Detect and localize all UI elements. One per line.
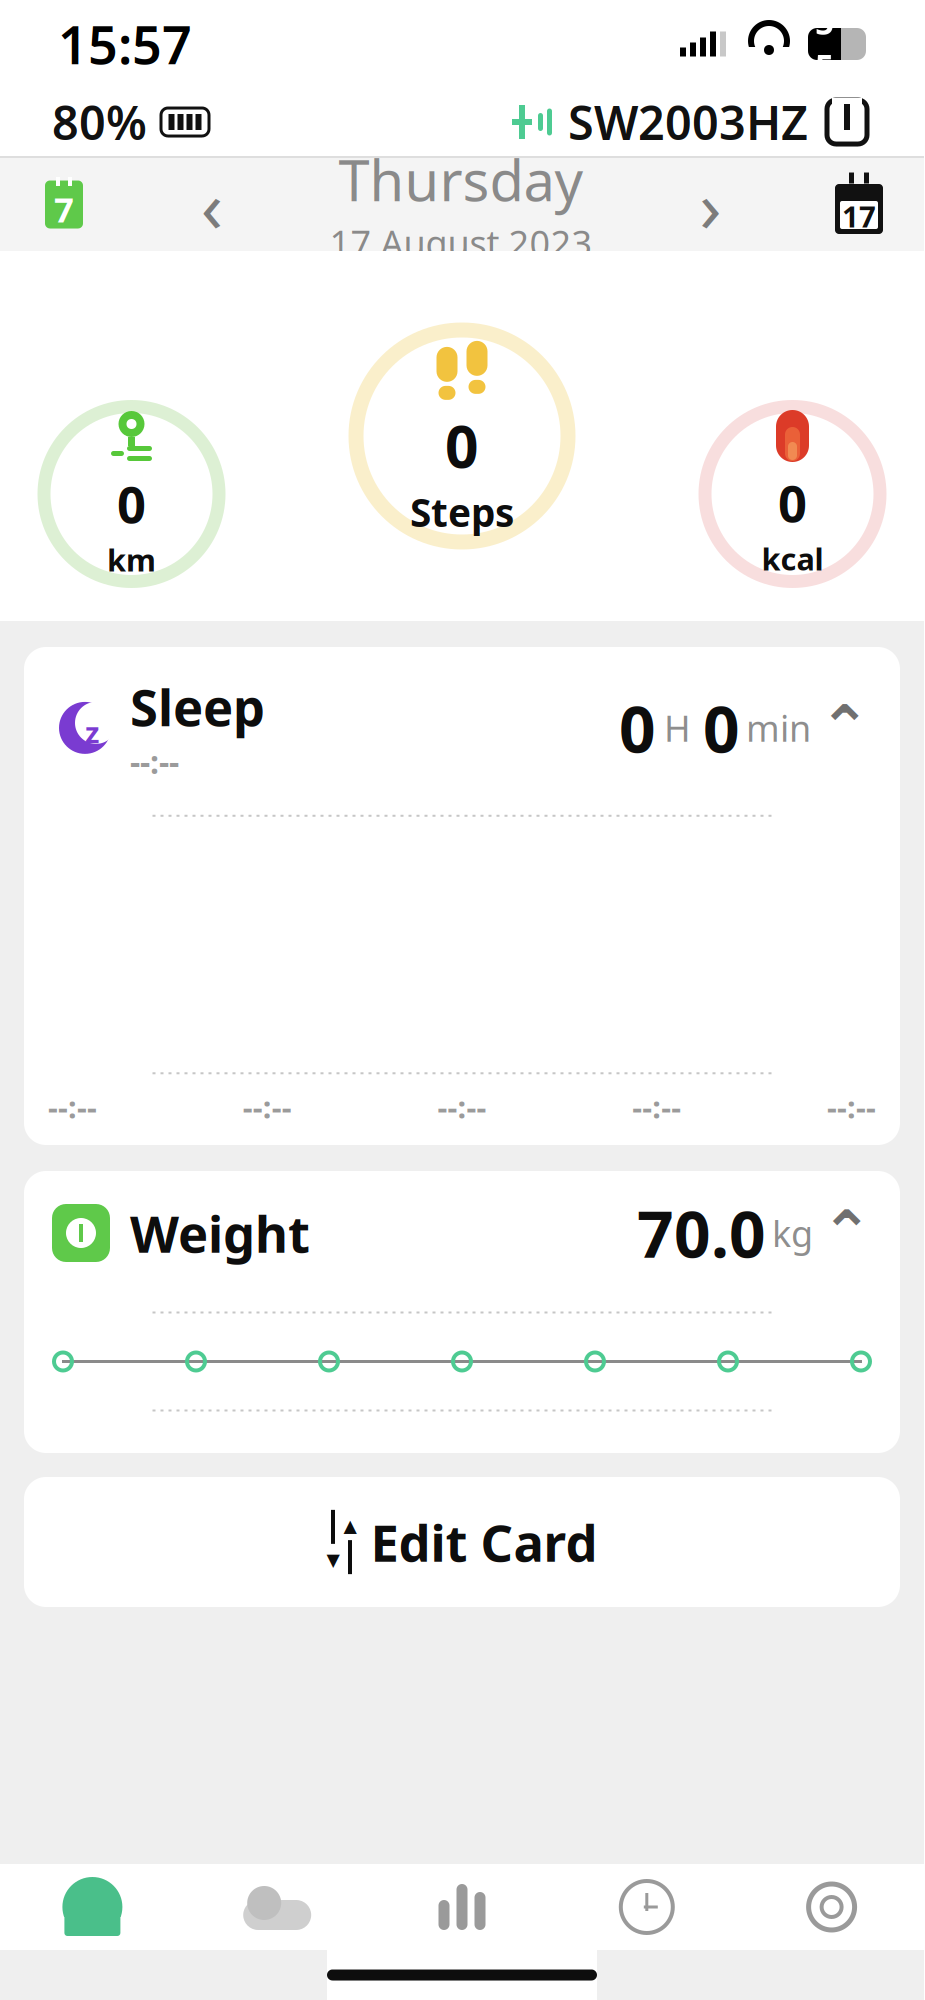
button[interactable]: Last 7 days [34,174,94,234]
button[interactable]: Settings [739,1864,924,1950]
staticText: 55 [815,0,834,88]
button[interactable]: ▾ [24,1477,900,1607]
staticText: ▾ [326,1544,339,1574]
staticText: kcal [761,538,823,579]
staticText: › [699,157,721,252]
staticText: 0 [619,685,656,770]
staticText: ▴ [343,1510,356,1540]
button[interactable]: Activity [185,1864,370,1950]
staticText: --:-- [243,1086,292,1127]
button[interactable]: Home [0,1864,185,1950]
staticText: 15:57 [58,9,192,79]
staticText: --:-- [827,1086,876,1127]
button[interactable]: Statistics [370,1864,554,1950]
staticText: 0 [703,685,740,770]
staticText: km [107,539,156,580]
staticText: --:-- [437,1086,486,1127]
button[interactable]: Calendar [828,173,890,235]
staticText: 80% [52,91,147,153]
staticText: 70.0 [637,1190,766,1275]
staticText: --:-- [48,1086,97,1127]
staticText: Edit Card [370,1508,597,1576]
staticText: kg [772,1209,813,1257]
staticText: H [664,704,691,752]
staticText: Sleep [130,673,265,740]
staticText: z [85,712,99,751]
staticText: 7 [54,186,74,232]
staticText: Weight [130,1199,310,1267]
staticText: Thursday [338,142,583,217]
button[interactable]: Previous day [177,169,247,239]
staticText: SW2003HZ [568,91,808,153]
button[interactable]: Next day [675,169,745,239]
button[interactable]: Share [822,95,872,149]
staticText: 17 [842,196,876,235]
staticText: ⌃ [821,1198,872,1268]
button[interactable]: History [554,1864,739,1950]
staticText: --:-- [632,1086,681,1127]
button[interactable]: Weight [24,1171,900,1453]
staticText: min [746,704,811,752]
staticText: ‹ [201,157,223,252]
button[interactable]: z [24,647,900,1145]
staticText: --:-- [130,740,179,783]
staticText: 17 August 2023 [329,219,592,267]
staticText: 0 [445,406,479,484]
staticText: 0 [778,469,807,536]
staticText: 0 [117,470,146,537]
staticText: ⌃ [819,693,870,763]
staticText: Steps [410,486,514,538]
